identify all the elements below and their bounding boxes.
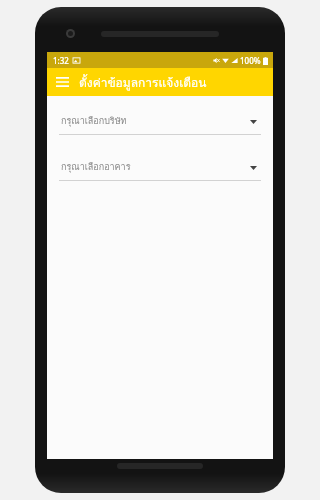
button[interactable]: Open navigation menu — [51, 71, 73, 93]
staticText: กรุณาเลือกบริษัท — [61, 114, 127, 128]
staticText: กรุณาเลือกอาคาร — [61, 160, 131, 174]
staticText: 1:32 — [53, 55, 69, 66]
staticText: ตั้งค่าข้อมูลการแจ้งเตือน — [79, 73, 207, 92]
button[interactable]: กรุณาเลือกอาคาร — [59, 156, 261, 181]
staticText: 100% — [240, 55, 261, 66]
button[interactable]: กรุณาเลือกบริษัท — [59, 110, 261, 135]
